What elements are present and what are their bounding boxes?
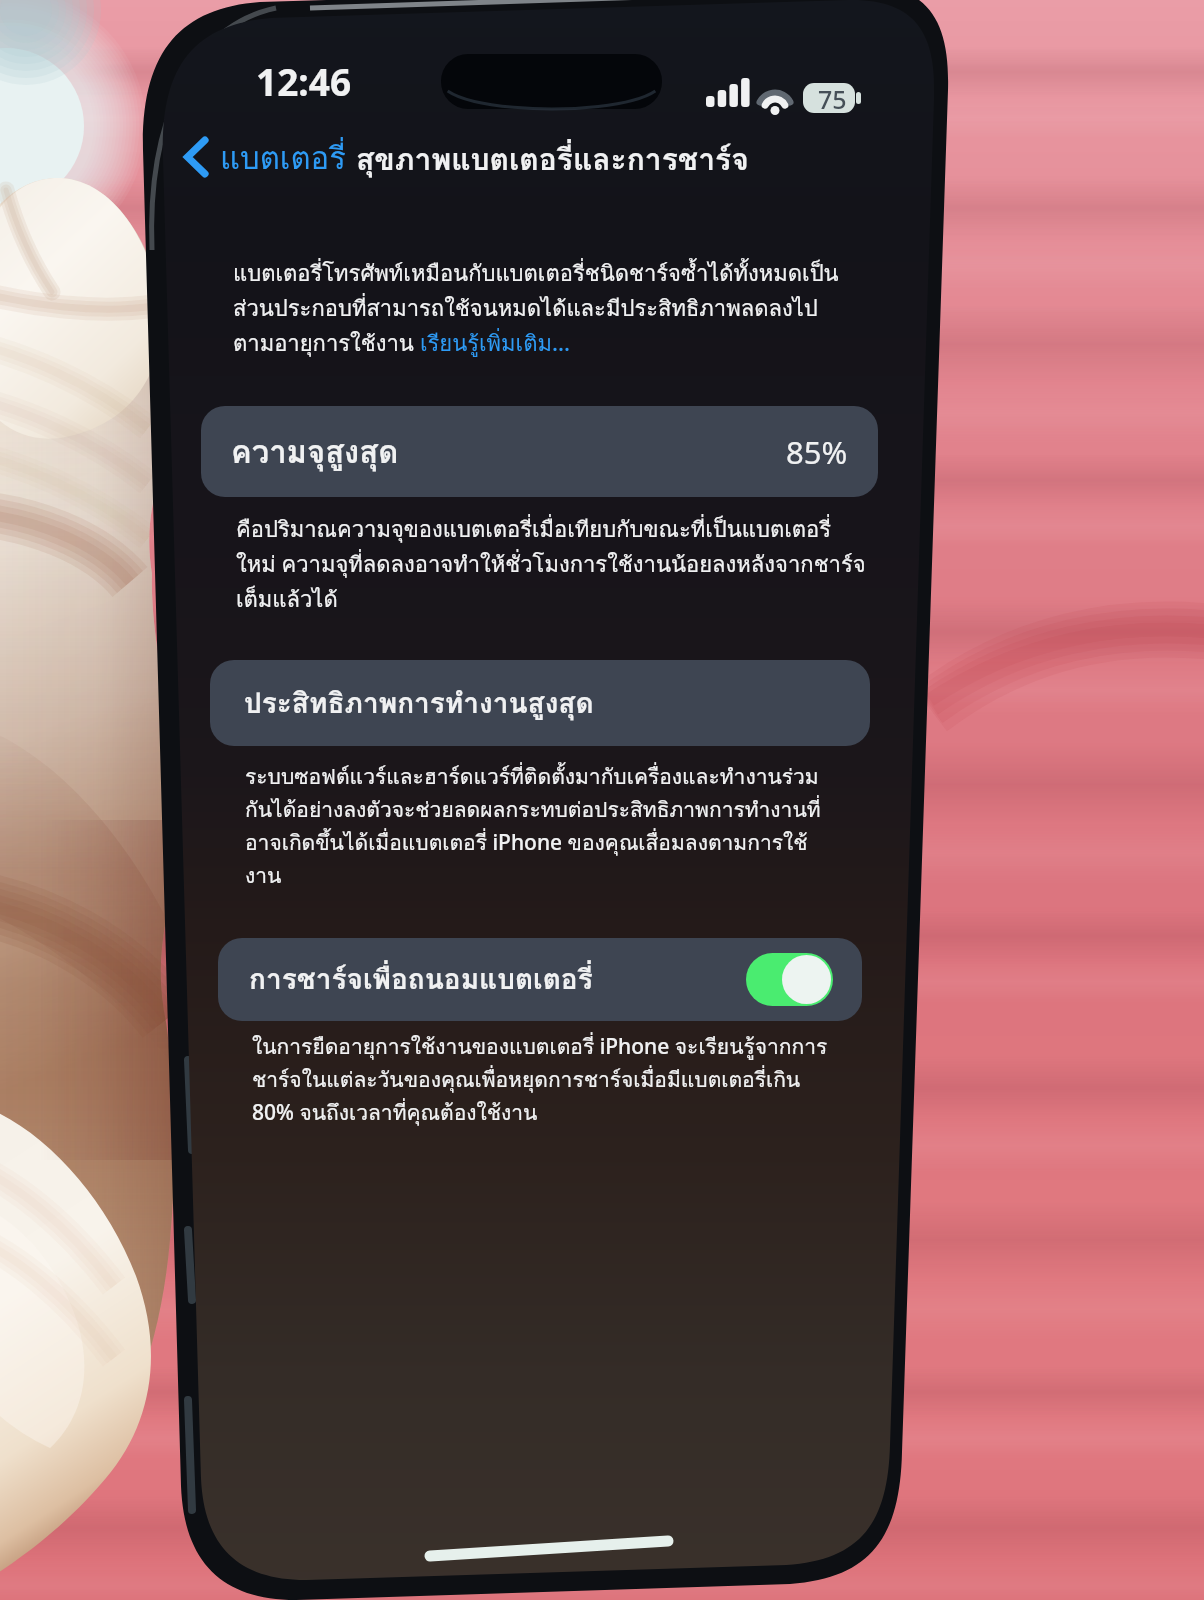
staticText: แบตเตอรี่ <box>220 133 346 182</box>
other: Back to Battery <box>182 136 210 178</box>
staticText: ในการยืดอายุการใช้งานของแบตเตอรี่ iPhone… <box>252 1030 828 1063</box>
button[interactable]: การชาร์จเพื่อถนอมแบตเตอรี่ <box>218 938 862 1021</box>
staticText: อาจเกิดขึ้นได้เมื่อแบตเตอรี่ iPhone ของค… <box>245 826 808 859</box>
staticText: 80% จนถึงเวลาที่คุณต้องใช้งาน <box>252 1096 538 1129</box>
staticText: เต็มแล้วได้ <box>236 582 338 617</box>
staticText: ความจุสูงสุด <box>231 427 399 476</box>
staticText: ชาร์จในแต่ละวันของคุณเพื่อหยุดการชาร์จเม… <box>252 1063 801 1096</box>
button[interactable]: Back to Battery <box>178 128 350 186</box>
staticText: เรียนรู้เพิ่มเติม... <box>420 326 570 361</box>
staticText: การชาร์จเพื่อถนอมแบตเตอรี่ <box>249 957 593 1002</box>
staticText: ระบบซอฟต์แวร์และฮาร์ดแวร์ที่ติดตั้งมากับ… <box>245 760 819 793</box>
staticText: งาน <box>245 859 282 892</box>
staticText: 75 <box>818 82 847 114</box>
staticText: ใหม่ ความจุที่ลดลงอาจทำให้ชั่วโมงการใช้ง… <box>236 547 866 582</box>
staticText: ตามอายุการใช้งาน <box>233 326 420 361</box>
button[interactable]: เรียนรู้เพิ่มเติม... <box>420 326 570 361</box>
staticText: แบตเตอรี่โทรศัพท์เหมือนกับแบตเตอรี่ชนิดช… <box>233 256 839 291</box>
button[interactable]: Optimized battery charging, on <box>746 953 833 1006</box>
button[interactable]: ประสิทธิภาพการทำงานสูงสุด <box>210 660 870 746</box>
staticText: 85% <box>786 431 848 473</box>
staticText: กันได้อย่างลงตัวจะช่วยลดผลกระทบต่อประสิท… <box>245 793 821 826</box>
staticText: สุขภาพแบตเตอรี่และการชาร์จ <box>356 136 749 184</box>
staticText: ประสิทธิภาพการทำงานสูงสุด <box>244 681 594 726</box>
staticText: ส่วนประกอบที่สามารถใช้จนหมดได้และมีประสิ… <box>233 291 818 326</box>
staticText: คือปริมาณความจุของแบตเตอรี่เมื่อเทียบกับ… <box>236 512 832 547</box>
button[interactable]: ความจุสูงสุด <box>201 406 878 497</box>
staticText: 12:46 <box>256 56 352 106</box>
